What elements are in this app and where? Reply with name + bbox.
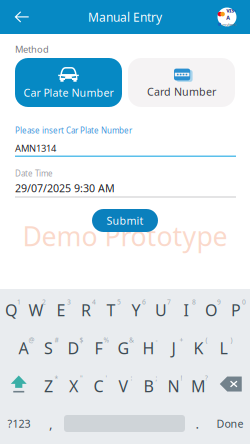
staticText: Y bbox=[131, 299, 140, 321]
staticText: 5 bbox=[117, 298, 121, 306]
button[interactable]: R bbox=[75, 291, 100, 325]
button[interactable]: A bbox=[12, 329, 37, 363]
button[interactable]: , bbox=[38, 407, 64, 439]
button[interactable]: ?123 bbox=[0, 407, 38, 439]
staticText: X bbox=[69, 375, 78, 397]
button[interactable]: Y bbox=[125, 291, 150, 325]
button[interactable]: W bbox=[25, 291, 50, 325]
staticText: - bbox=[155, 336, 157, 344]
staticText: N bbox=[167, 375, 179, 397]
staticText: Demo Prototype bbox=[22, 218, 227, 254]
staticText: Please insert Car Plate Number bbox=[15, 125, 132, 136]
staticText: ! bbox=[180, 374, 182, 382]
staticText: " bbox=[80, 374, 83, 382]
button[interactable]: X bbox=[62, 367, 87, 401]
button[interactable]: Accepted cards bbox=[213, 3, 241, 31]
button[interactable]: Card Number bbox=[128, 58, 235, 107]
staticText: Car Plate Number bbox=[23, 85, 113, 100]
staticText: + bbox=[179, 336, 183, 344]
button[interactable]: Shift bbox=[0, 367, 37, 401]
button[interactable]: T bbox=[100, 291, 125, 325]
staticText: $ bbox=[79, 336, 83, 344]
staticText: V bbox=[118, 375, 128, 397]
staticText: ( bbox=[205, 336, 207, 344]
staticText: 6 bbox=[142, 298, 146, 306]
button[interactable]: F bbox=[87, 329, 112, 363]
button[interactable]: Done bbox=[210, 407, 250, 439]
button[interactable]: C bbox=[87, 367, 112, 401]
button[interactable]: V bbox=[112, 367, 137, 401]
button[interactable]: Car Plate Number bbox=[15, 58, 122, 107]
staticText: 7 bbox=[167, 298, 171, 306]
staticText: Method bbox=[15, 43, 49, 55]
staticText: S bbox=[44, 337, 53, 359]
staticText: M bbox=[191, 375, 206, 397]
staticText: Date Time bbox=[15, 168, 53, 179]
button[interactable]: J bbox=[162, 329, 187, 363]
button[interactable]: Back bbox=[7, 2, 37, 32]
staticText: H bbox=[142, 337, 154, 359]
staticText: ? bbox=[205, 374, 208, 382]
staticText: U bbox=[155, 299, 167, 321]
staticText: Done bbox=[216, 416, 243, 431]
staticText: P bbox=[231, 299, 241, 321]
staticText: , bbox=[49, 415, 53, 432]
staticText: T bbox=[106, 299, 115, 321]
button[interactable]: H bbox=[137, 329, 162, 363]
button[interactable]: E bbox=[50, 291, 75, 325]
button[interactable]: Z bbox=[37, 367, 62, 401]
staticText: ' bbox=[105, 374, 107, 382]
button[interactable]: K bbox=[187, 329, 212, 363]
button[interactable]: U bbox=[150, 291, 175, 325]
staticText: 0 bbox=[242, 298, 246, 306]
staticText: % bbox=[103, 336, 109, 344]
staticText: W bbox=[28, 299, 43, 321]
staticText: 3 bbox=[67, 298, 71, 306]
staticText: AMN1314 bbox=[15, 142, 56, 154]
button[interactable]: D bbox=[62, 329, 87, 363]
staticText: Manual Entry bbox=[88, 9, 162, 25]
staticText: A bbox=[18, 337, 28, 359]
staticText: Card Number bbox=[147, 84, 216, 99]
staticText: 2 bbox=[42, 298, 46, 306]
button[interactable]: M bbox=[187, 367, 212, 401]
button[interactable]: O bbox=[200, 291, 225, 325]
staticText: mybank bbox=[222, 22, 236, 27]
staticText: Z bbox=[44, 375, 53, 397]
staticText: 1 bbox=[17, 298, 21, 306]
button[interactable]: Delete bbox=[212, 367, 250, 401]
staticText: ) bbox=[230, 336, 232, 344]
button[interactable]: S bbox=[37, 329, 62, 363]
staticText: ; bbox=[155, 374, 157, 382]
staticText: G bbox=[117, 337, 129, 359]
staticText: 29/07/2025 9:30 AM bbox=[15, 181, 115, 195]
staticText: ?123 bbox=[7, 416, 30, 431]
staticText: * bbox=[54, 374, 58, 382]
staticText: # bbox=[54, 336, 58, 344]
button[interactable]: . bbox=[185, 407, 210, 439]
staticText: J bbox=[171, 337, 175, 359]
button[interactable]: Submit bbox=[92, 209, 158, 232]
button[interactable]: Space bbox=[64, 407, 185, 439]
button[interactable]: I bbox=[175, 291, 200, 325]
staticText: K bbox=[193, 337, 203, 359]
staticText: Submit bbox=[106, 213, 143, 228]
staticText: . bbox=[195, 415, 199, 432]
button[interactable]: Q bbox=[0, 291, 25, 325]
staticText: 8 bbox=[192, 298, 196, 306]
staticText: & bbox=[129, 336, 134, 344]
staticText: 4 bbox=[92, 298, 96, 306]
button[interactable]: P bbox=[225, 291, 250, 325]
button[interactable]: L bbox=[212, 329, 237, 363]
staticText: Q bbox=[5, 299, 17, 321]
staticText: O bbox=[205, 299, 217, 321]
staticText: F bbox=[94, 337, 102, 359]
button[interactable]: B bbox=[137, 367, 162, 401]
button[interactable]: G bbox=[112, 329, 137, 363]
staticText: E bbox=[56, 299, 65, 321]
staticText: 9 bbox=[217, 298, 221, 306]
staticText: @ bbox=[28, 336, 34, 344]
staticText: L bbox=[219, 337, 227, 359]
staticText: B bbox=[143, 375, 153, 397]
button[interactable]: N bbox=[162, 367, 187, 401]
